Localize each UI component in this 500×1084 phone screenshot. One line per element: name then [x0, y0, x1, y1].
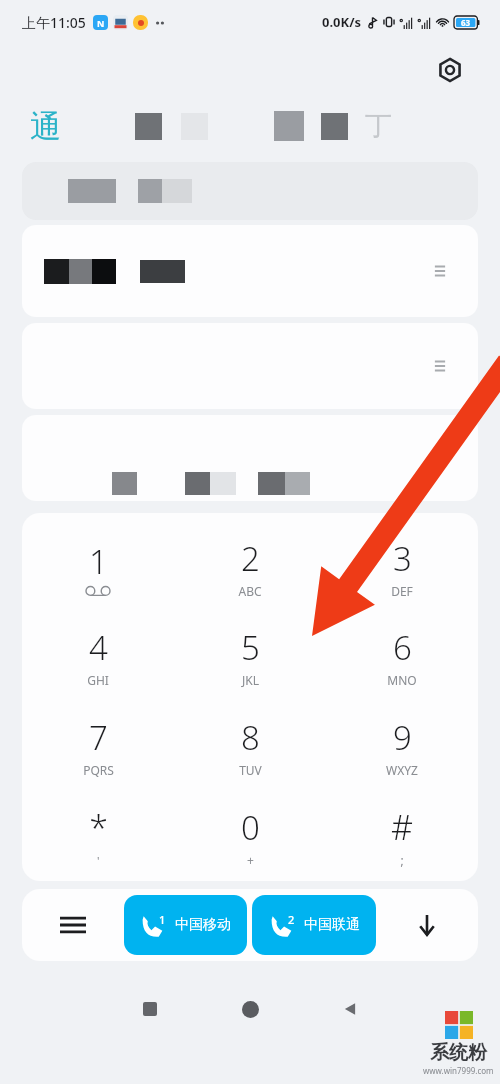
button[interactable]: Hide dialpad	[376, 889, 478, 961]
staticText: www.win7999.com	[423, 1065, 494, 1076]
staticText: *	[89, 805, 108, 851]
staticText: MNO	[387, 672, 417, 688]
button[interactable]: 3	[326, 523, 478, 612]
other: More options	[432, 450, 448, 466]
staticText: 2	[241, 536, 260, 581]
staticText: 系统粉	[430, 1041, 487, 1065]
button[interactable]: 8	[174, 701, 326, 791]
button[interactable]: 2	[252, 895, 376, 955]
other: More options	[432, 358, 448, 374]
button[interactable]: 9	[326, 701, 478, 791]
staticText: 中国联通	[304, 916, 360, 934]
button[interactable]: 通	[30, 107, 61, 146]
staticText: WXYZ	[386, 762, 418, 778]
staticText: TUV	[239, 762, 262, 778]
staticText: PQRS	[83, 762, 114, 778]
button[interactable]: Back	[300, 981, 400, 1037]
button[interactable]: 7	[22, 701, 174, 791]
button[interactable]: More options	[22, 323, 478, 409]
button[interactable]: Recents	[100, 981, 200, 1037]
staticText: 9	[393, 715, 412, 760]
staticText: 2	[288, 912, 295, 927]
button[interactable]: *	[22, 791, 174, 881]
staticText: 丁	[365, 109, 392, 143]
other: More options	[432, 263, 448, 279]
staticText: 8	[241, 715, 260, 760]
staticText: DEF	[391, 583, 413, 599]
button[interactable]: 1	[124, 895, 247, 955]
staticText: 7	[89, 715, 108, 760]
button[interactable]: 4	[22, 612, 174, 701]
staticText: 上午11:05	[22, 13, 86, 32]
staticText: JKL	[242, 672, 259, 688]
staticText: '	[97, 853, 100, 868]
staticText: 6	[393, 625, 412, 670]
staticText: 3	[393, 536, 412, 581]
staticText: 中国移动	[175, 916, 231, 934]
button[interactable]: Home	[200, 981, 300, 1037]
button[interactable]: 5	[174, 612, 326, 701]
staticText: 1	[89, 539, 108, 584]
staticText: ;	[400, 852, 404, 868]
button[interactable]: More options	[22, 225, 478, 317]
staticText: 4	[89, 625, 108, 670]
button[interactable]: 6	[326, 612, 478, 701]
button[interactable]: #	[326, 791, 478, 881]
staticText: GHI	[87, 672, 109, 688]
staticText: 63	[461, 17, 471, 28]
staticText: 5	[241, 625, 260, 670]
staticText: #	[391, 804, 413, 850]
button[interactable]	[22, 162, 478, 220]
staticText: 1	[159, 912, 166, 927]
button[interactable]: Menu	[22, 889, 124, 961]
staticText: 0	[241, 805, 260, 850]
staticText: 0.0K/s	[322, 13, 362, 31]
button[interactable]: Settings	[432, 52, 468, 88]
staticText: N	[97, 17, 105, 29]
button[interactable]: 0	[174, 791, 326, 881]
staticText: ABC	[238, 583, 262, 599]
button[interactable]: 2	[174, 523, 326, 612]
staticText: +	[247, 852, 254, 868]
staticText: 通	[30, 107, 61, 146]
button[interactable]: 1	[22, 523, 174, 612]
button[interactable]: More options	[22, 415, 478, 501]
